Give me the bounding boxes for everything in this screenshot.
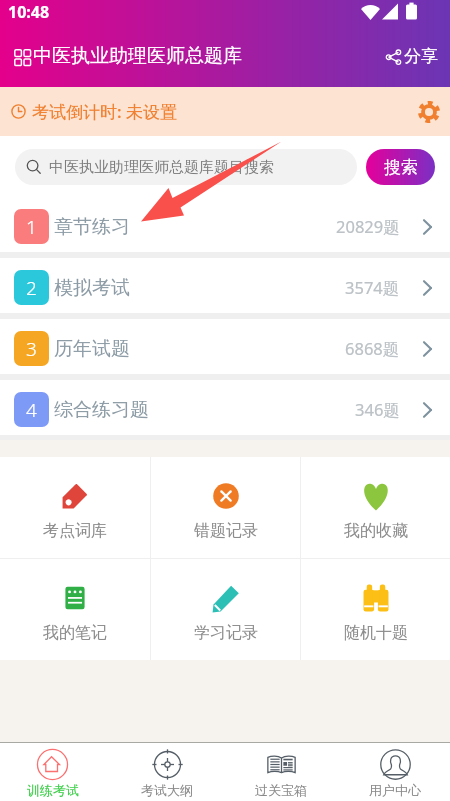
button[interactable]: 考试倒计时: 未设置 bbox=[0, 87, 450, 136]
staticText: 346题 bbox=[355, 398, 400, 421]
staticText: 过关宝箱 bbox=[255, 782, 307, 798]
staticText: 我的笔记 bbox=[43, 623, 107, 643]
staticText: 我的收藏 bbox=[344, 521, 408, 541]
button[interactable]: 用户中心 bbox=[338, 746, 450, 801]
button[interactable]: Settings bbox=[418, 101, 440, 123]
staticText: 章节练习 bbox=[54, 215, 130, 239]
button[interactable]: 3 bbox=[0, 319, 450, 374]
staticText: 错题记录 bbox=[194, 521, 258, 541]
staticText: 综合练习题 bbox=[54, 398, 149, 422]
staticText: 随机十题 bbox=[344, 623, 408, 643]
staticText: 3574题 bbox=[345, 276, 400, 299]
staticText: 考试倒计时: 未设置 bbox=[32, 100, 178, 123]
button[interactable]: 分享 bbox=[382, 40, 442, 73]
staticText: 1 bbox=[26, 214, 37, 240]
button[interactable]: 训练考试 bbox=[0, 746, 110, 801]
button[interactable]: 考点词库 bbox=[0, 457, 150, 558]
staticText: 考点词库 bbox=[43, 521, 107, 541]
staticText: 分享 bbox=[404, 46, 438, 67]
button[interactable]: 中医执业助理医师总题库题目搜索 bbox=[15, 149, 357, 185]
button[interactable]: 过关宝箱 bbox=[224, 746, 338, 801]
staticText: 3 bbox=[26, 336, 37, 362]
staticText: 历年试题 bbox=[54, 337, 130, 361]
button[interactable]: 考试大纲 bbox=[110, 746, 224, 801]
staticText: 考试大纲 bbox=[141, 782, 193, 798]
button[interactable]: 随机十题 bbox=[301, 559, 450, 660]
staticText: 模拟考试 bbox=[54, 276, 130, 300]
button[interactable]: 2 bbox=[0, 258, 450, 313]
staticText: 搜索 bbox=[384, 157, 418, 178]
staticText: 2 bbox=[26, 275, 37, 301]
staticText: 学习记录 bbox=[194, 623, 258, 643]
staticText: 6868题 bbox=[345, 337, 400, 360]
staticText: 4 bbox=[26, 397, 37, 423]
button[interactable]: 学习记录 bbox=[151, 559, 300, 660]
button[interactable]: 我的收藏 bbox=[301, 457, 450, 558]
button[interactable]: 搜索 bbox=[366, 149, 435, 185]
button[interactable]: 错题记录 bbox=[151, 457, 300, 558]
button[interactable]: 4 bbox=[0, 380, 450, 435]
staticText: 中医执业助理医师总题库 bbox=[33, 44, 242, 68]
staticText: 用户中心 bbox=[369, 782, 421, 798]
button[interactable]: 我的笔记 bbox=[0, 559, 150, 660]
staticText: 训练考试 bbox=[27, 782, 79, 798]
button[interactable]: 1 bbox=[0, 197, 450, 252]
staticText: 10:48 bbox=[8, 1, 50, 23]
staticText: 20829题 bbox=[336, 215, 400, 238]
staticText: 中医执业助理医师总题库题目搜索 bbox=[49, 158, 274, 177]
